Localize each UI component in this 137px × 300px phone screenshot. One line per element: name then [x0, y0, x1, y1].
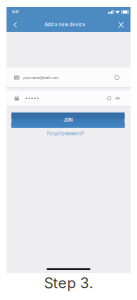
staticText: Step 3. — [44, 274, 93, 292]
button[interactable]: Forgot password? — [42, 128, 95, 140]
staticText: Forgot password? — [47, 131, 84, 136]
staticText: Add a new device — [44, 22, 85, 27]
button[interactable]: Close — [115, 18, 130, 31]
staticText: yourname@mail.com — [23, 75, 58, 80]
button[interactable]: Back — [6, 18, 21, 31]
staticText: 9:41 — [12, 10, 19, 14]
button[interactable]: JOIN — [6, 113, 130, 128]
staticText: JOIN — [63, 118, 72, 123]
